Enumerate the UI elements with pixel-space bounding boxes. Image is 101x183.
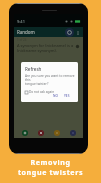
button[interactable]: Remove [38, 130, 44, 136]
staticText: Refresh [25, 66, 42, 72]
button[interactable]: Add [22, 130, 28, 136]
staticText: Do not ask again [29, 90, 55, 94]
staticText: Removing tongue twisters [0, 157, 101, 177]
button[interactable]: Share [70, 130, 76, 136]
staticText: 9:41 [17, 19, 25, 24]
button[interactable]: Do not ask again [25, 90, 55, 94]
button[interactable]: YES [62, 94, 72, 98]
staticText: A synonym for (nickname) is a (nickname … [17, 43, 75, 53]
button[interactable]: NO [51, 94, 60, 98]
button[interactable]: More options [74, 29, 81, 36]
staticText: Are you sure you want to remove this ton… [25, 74, 75, 86]
button[interactable]: Refresh [65, 28, 74, 37]
button[interactable]: Edit [54, 130, 60, 136]
staticText: Random [17, 29, 35, 35]
